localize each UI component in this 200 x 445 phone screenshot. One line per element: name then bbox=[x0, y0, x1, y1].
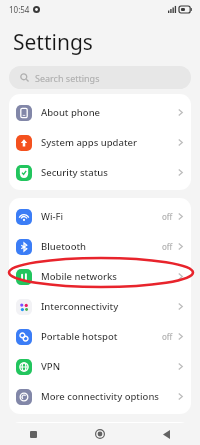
button[interactable]: VPN bbox=[9, 351, 191, 381]
button[interactable]: System apps updater bbox=[9, 127, 191, 157]
staticText: Portable hotspot bbox=[41, 330, 118, 343]
staticText: off bbox=[162, 331, 173, 342]
button[interactable]: Portable hotspot bbox=[9, 321, 191, 351]
button[interactable]: Interconnectivity bbox=[9, 291, 191, 321]
button[interactable]: Search settings bbox=[9, 66, 191, 89]
staticText: Mobile networks bbox=[41, 270, 117, 283]
button[interactable]: Recent apps bbox=[0, 423, 66, 445]
staticText: 10:54 bbox=[9, 4, 30, 15]
staticText: System apps updater bbox=[41, 136, 137, 149]
button[interactable]: Mobile networks bbox=[9, 261, 191, 291]
button[interactable]: About phone bbox=[9, 97, 191, 127]
button[interactable]: Lock screen bbox=[9, 425, 191, 442]
button[interactable]: More connectivity options bbox=[9, 381, 191, 411]
staticText: Security status bbox=[41, 166, 108, 179]
staticText: off bbox=[162, 211, 173, 222]
button[interactable]: Home bbox=[66, 423, 133, 445]
button[interactable]: Wi-Fi bbox=[9, 201, 191, 231]
staticText: off bbox=[162, 241, 173, 252]
button[interactable]: Back bbox=[133, 423, 200, 445]
button[interactable]: Security status bbox=[9, 157, 191, 187]
staticText: Interconnectivity bbox=[41, 300, 119, 313]
staticText: More connectivity options bbox=[41, 390, 159, 403]
staticText: Wi-Fi bbox=[41, 210, 64, 223]
staticText: Bluetooth bbox=[41, 240, 87, 253]
staticText: Settings bbox=[13, 28, 93, 57]
staticText: Search settings bbox=[35, 72, 100, 84]
staticText: About phone bbox=[41, 106, 101, 119]
button[interactable]: Bluetooth bbox=[9, 231, 191, 261]
staticText: VPN bbox=[41, 360, 61, 373]
